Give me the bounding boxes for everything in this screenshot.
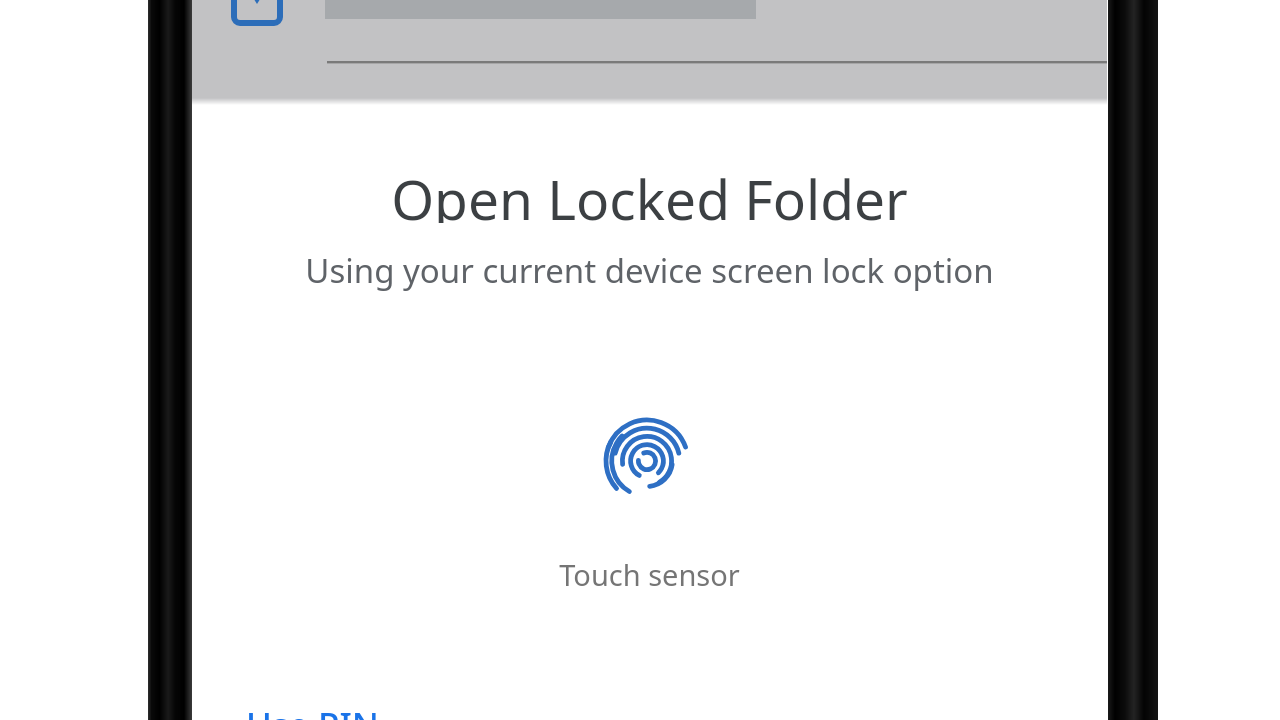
staticText: Open Locked Folder <box>391 161 908 223</box>
button[interactable]: Use PIN <box>246 701 446 720</box>
button[interactable]: Touch fingerprint sensor <box>597 411 697 511</box>
staticText: Touch sensor <box>559 555 740 594</box>
staticText: Use PIN <box>246 701 379 720</box>
staticText: Using your current device screen lock op… <box>305 248 994 292</box>
